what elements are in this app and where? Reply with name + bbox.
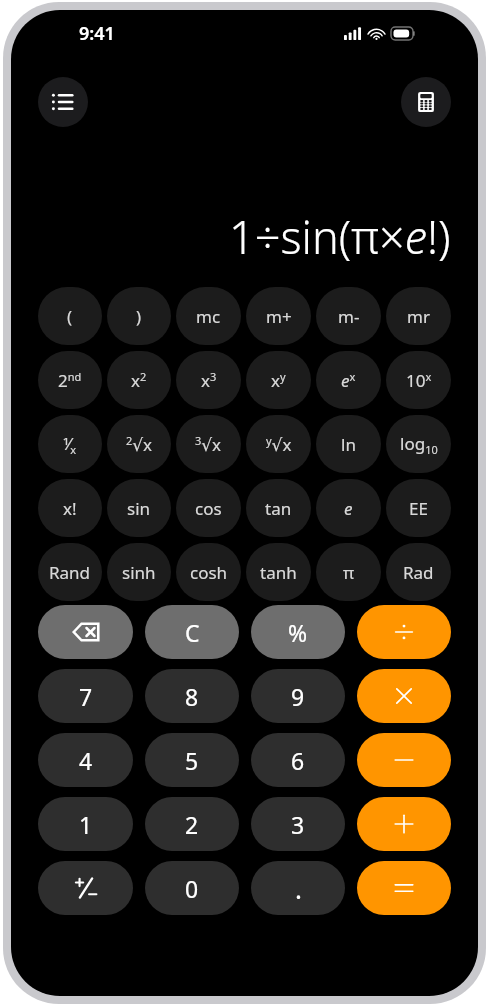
staticText: 3 xyxy=(291,809,305,840)
staticText: xy xyxy=(271,369,286,392)
staticText: C xyxy=(185,617,200,648)
staticText: 1 xyxy=(79,809,93,840)
staticText: x! xyxy=(63,497,77,520)
staticText: mc xyxy=(196,305,221,328)
button[interactable]: xy xyxy=(246,351,311,409)
button[interactable]: % xyxy=(251,605,345,659)
button[interactable] xyxy=(38,861,133,915)
button[interactable]: . xyxy=(251,861,345,915)
button[interactable] xyxy=(357,669,451,723)
button[interactable]: 2nd xyxy=(38,351,102,409)
button[interactable]: 6 xyxy=(251,733,345,787)
button[interactable]: x2 xyxy=(107,351,171,409)
staticText: ex xyxy=(341,369,356,392)
button[interactable]: ( xyxy=(38,287,102,345)
staticText: Rad xyxy=(403,561,434,584)
staticText: Rand xyxy=(49,561,91,584)
button[interactable]: ⅟x xyxy=(38,415,102,473)
staticText: 5 xyxy=(185,745,199,776)
button[interactable]: Delete xyxy=(38,605,133,659)
staticText: 4 xyxy=(79,745,93,776)
button[interactable]: sin xyxy=(107,479,171,537)
button[interactable]: tan xyxy=(246,479,311,537)
staticText: . xyxy=(295,871,302,906)
staticText: e xyxy=(344,497,353,520)
button[interactable] xyxy=(357,605,451,659)
button[interactable]: x3 xyxy=(176,351,241,409)
staticText: m+ xyxy=(266,305,292,328)
button[interactable]: 3√x xyxy=(176,415,241,473)
button[interactable]: mr xyxy=(386,287,451,345)
staticText: x2 xyxy=(131,369,147,392)
staticText: % xyxy=(288,617,308,648)
staticText: m- xyxy=(338,305,360,328)
button[interactable]: 5 xyxy=(145,733,239,787)
staticText: 6 xyxy=(291,745,305,776)
staticText: 2 xyxy=(185,809,199,840)
staticText: sinh xyxy=(122,561,156,584)
button[interactable]: sinh xyxy=(107,543,171,601)
button[interactable]: ) xyxy=(107,287,171,345)
staticText: ⅟x xyxy=(63,432,77,457)
button[interactable]: cos xyxy=(176,479,241,537)
button[interactable]: EE xyxy=(386,479,451,537)
button[interactable]: x! xyxy=(38,479,102,537)
staticText: tanh xyxy=(260,561,297,584)
staticText: 10x xyxy=(406,369,432,392)
button[interactable]: 7 xyxy=(38,669,133,723)
button[interactable]: e xyxy=(316,479,381,537)
staticText: y√x xyxy=(266,433,292,456)
staticText: ln xyxy=(341,433,356,456)
staticText: ) xyxy=(136,305,142,328)
button[interactable]: cosh xyxy=(176,543,241,601)
button[interactable]: 10x xyxy=(386,351,451,409)
button[interactable]: Calculator mode xyxy=(401,77,451,127)
button[interactable]: 3 xyxy=(251,797,345,851)
staticText: EE xyxy=(409,497,428,520)
staticText: 2nd xyxy=(58,369,82,392)
button[interactable]: m+ xyxy=(246,287,311,345)
button[interactable]: 2√x xyxy=(107,415,171,473)
staticText: log10 xyxy=(400,432,438,457)
staticText: 1÷sin(π×e!) xyxy=(229,206,451,267)
button[interactable] xyxy=(357,733,451,787)
staticText: mr xyxy=(407,305,430,328)
staticText: π xyxy=(343,561,355,584)
staticText: 7 xyxy=(79,681,93,712)
staticText: tan xyxy=(265,497,292,520)
button[interactable] xyxy=(357,797,451,851)
button[interactable]: History xyxy=(38,77,88,127)
button[interactable]: 0 xyxy=(145,861,239,915)
button[interactable]: 1 xyxy=(38,797,133,851)
button[interactable]: ln xyxy=(316,415,381,473)
staticText: cos xyxy=(195,497,222,520)
staticText: x3 xyxy=(201,369,217,392)
staticText: 9:41 xyxy=(79,21,115,46)
button[interactable]: Rand xyxy=(38,543,102,601)
button[interactable]: C xyxy=(145,605,239,659)
button[interactable]: 9 xyxy=(251,669,345,723)
button[interactable]: ex xyxy=(316,351,381,409)
button[interactable]: m- xyxy=(316,287,381,345)
button[interactable]: log10 xyxy=(386,415,451,473)
staticText: 0 xyxy=(185,873,199,904)
staticText: 8 xyxy=(185,681,199,712)
staticText: ( xyxy=(67,305,73,328)
staticText: 2√x xyxy=(126,433,153,456)
button[interactable] xyxy=(357,861,451,915)
button[interactable]: tanh xyxy=(246,543,311,601)
button[interactable]: Rad xyxy=(386,543,451,601)
staticText: sin xyxy=(127,497,151,520)
button[interactable]: 2 xyxy=(145,797,239,851)
staticText: 3√x xyxy=(195,433,222,456)
button[interactable]: 8 xyxy=(145,669,239,723)
button[interactable]: y√x xyxy=(246,415,311,473)
staticText: 9 xyxy=(291,681,305,712)
button[interactable]: π xyxy=(316,543,381,601)
button[interactable]: 4 xyxy=(38,733,133,787)
staticText: cosh xyxy=(190,561,228,584)
button[interactable]: mc xyxy=(176,287,241,345)
